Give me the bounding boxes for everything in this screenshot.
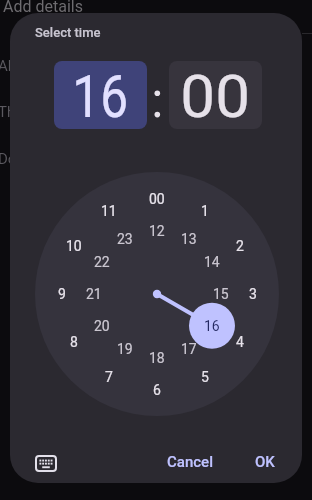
button[interactable]: 10 — [58, 235, 90, 257]
button[interactable]: 4 — [224, 331, 256, 353]
staticText: 13 — [181, 231, 197, 247]
button[interactable]: 13 — [173, 228, 205, 250]
staticText: Add details — [3, 0, 83, 16]
staticText: 20 — [94, 318, 110, 334]
staticText: All — [0, 57, 16, 75]
button[interactable]: 23 — [109, 228, 141, 250]
staticText: 15 — [213, 286, 229, 302]
staticText: 17 — [181, 341, 197, 357]
button[interactable]: 8 — [58, 331, 90, 353]
staticText: Select time — [35, 25, 101, 40]
staticText: 1 — [201, 203, 209, 219]
button[interactable]: 2 — [224, 235, 256, 257]
staticText: 22 — [94, 254, 110, 270]
staticText: 6 — [153, 382, 161, 398]
button[interactable]: OK — [245, 446, 285, 478]
button[interactable]: 19 — [109, 338, 141, 360]
staticText: 3 — [249, 286, 257, 302]
button[interactable]: 22 — [86, 251, 118, 273]
staticText: 00 — [149, 191, 165, 207]
button[interactable]: 1 — [189, 200, 221, 222]
button[interactable]: 15 — [205, 283, 237, 305]
staticText: 21 — [86, 286, 102, 302]
button[interactable]: 17 — [173, 338, 205, 360]
staticText: 7 — [105, 369, 113, 385]
button[interactable]: 9 — [46, 283, 78, 305]
staticText: Cancel — [167, 453, 214, 471]
staticText: 23 — [117, 231, 133, 247]
button[interactable]: 7 — [93, 366, 125, 388]
button[interactable] — [26, 444, 66, 482]
button[interactable]: 21 — [78, 283, 110, 305]
staticText: 00 — [180, 62, 251, 129]
staticText: 14 — [204, 254, 220, 270]
button[interactable]: 12 — [141, 220, 173, 242]
staticText: OK — [255, 453, 275, 471]
staticText: 12 — [149, 223, 165, 239]
staticText: 9 — [58, 286, 66, 302]
staticText: 10 — [66, 238, 82, 254]
button[interactable]: 00 — [169, 61, 262, 129]
button[interactable]: 5 — [189, 366, 221, 388]
staticText: 11 — [101, 203, 117, 219]
staticText: 5 — [201, 369, 209, 385]
button[interactable]: 16 — [54, 61, 147, 129]
staticText: 18 — [149, 350, 165, 366]
button[interactable]: 3 — [237, 283, 269, 305]
staticText: Do — [0, 150, 17, 168]
staticText: 19 — [117, 341, 133, 357]
staticText: 16 — [204, 318, 220, 334]
button[interactable]: 16 — [196, 315, 228, 337]
button[interactable]: 11 — [93, 200, 125, 222]
button[interactable]: 20 — [86, 315, 118, 337]
staticText: 16 — [72, 62, 129, 129]
button[interactable]: 00 — [141, 188, 173, 210]
staticText: Th — [0, 103, 16, 121]
button[interactable]: Cancel — [156, 446, 225, 478]
button[interactable]: 14 — [196, 251, 228, 273]
staticText: 8 — [70, 334, 78, 350]
button[interactable]: 6 — [141, 379, 173, 401]
button[interactable]: 18 — [141, 347, 173, 369]
staticText: 2 — [236, 238, 244, 254]
staticText: 4 — [236, 334, 244, 350]
